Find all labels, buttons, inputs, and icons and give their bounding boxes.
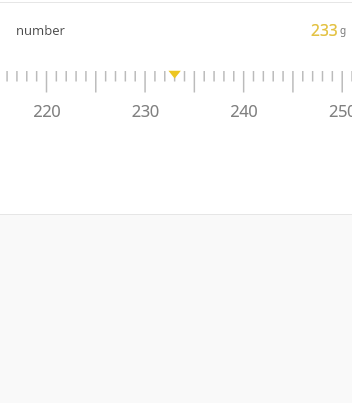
button[interactable]: number [0, 3, 352, 56]
staticText: 233 [311, 19, 338, 40]
staticText: g [340, 23, 347, 37]
button[interactable]: Number scale, 233 grams [0, 56, 352, 214]
staticText: number [16, 21, 65, 39]
